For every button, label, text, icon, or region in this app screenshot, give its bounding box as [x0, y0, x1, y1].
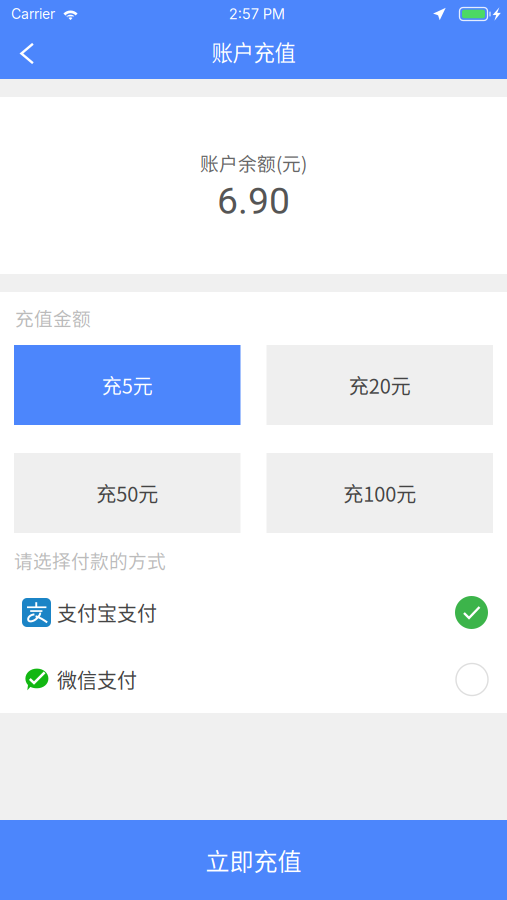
- button[interactable]: 充5元: [14, 345, 240, 425]
- button[interactable]: 微信支付: [0, 646, 507, 713]
- staticText: 请选择付款的方式: [14, 546, 166, 573]
- staticText: 2:57 PM: [229, 5, 285, 23]
- staticText: 账户余额(元): [200, 149, 307, 176]
- staticText: 充100元: [343, 478, 416, 507]
- button[interactable]: 支付宝支付: [0, 579, 507, 646]
- staticText: 充50元: [96, 478, 158, 507]
- button[interactable]: 充20元: [266, 345, 493, 425]
- staticText: 充值金额: [15, 304, 91, 331]
- staticText: Carrier: [11, 5, 55, 22]
- button[interactable]: Back: [0, 28, 58, 79]
- staticText: 充5元: [102, 370, 153, 399]
- staticText: 立即充值: [205, 843, 301, 877]
- staticText: 充20元: [349, 370, 411, 399]
- staticText: 6.90: [217, 179, 290, 223]
- staticText: 支付宝支付: [57, 598, 157, 627]
- button[interactable]: 立即充值: [0, 820, 507, 900]
- button[interactable]: 充50元: [14, 453, 240, 533]
- button[interactable]: 充100元: [266, 453, 493, 533]
- staticText: 账户充值: [211, 36, 295, 67]
- staticText: 微信支付: [57, 665, 137, 694]
